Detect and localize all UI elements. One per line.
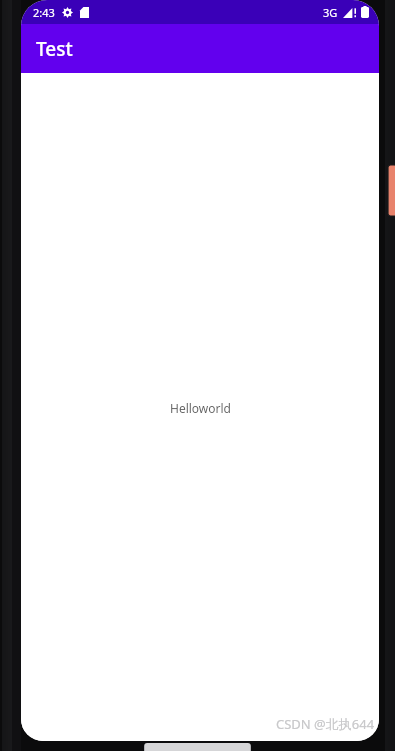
staticText: CSDN @北执644 xyxy=(276,715,375,733)
staticText: 2:43 xyxy=(33,5,55,20)
other: SIM card xyxy=(80,7,89,18)
staticText: 3G xyxy=(323,5,338,20)
other: Settings xyxy=(62,7,73,18)
button[interactable]: Test xyxy=(21,24,379,73)
staticText: Helloworld xyxy=(170,400,231,416)
other: Signal strength xyxy=(343,7,356,18)
other: Battery xyxy=(361,6,369,18)
staticText: Test xyxy=(36,36,73,62)
